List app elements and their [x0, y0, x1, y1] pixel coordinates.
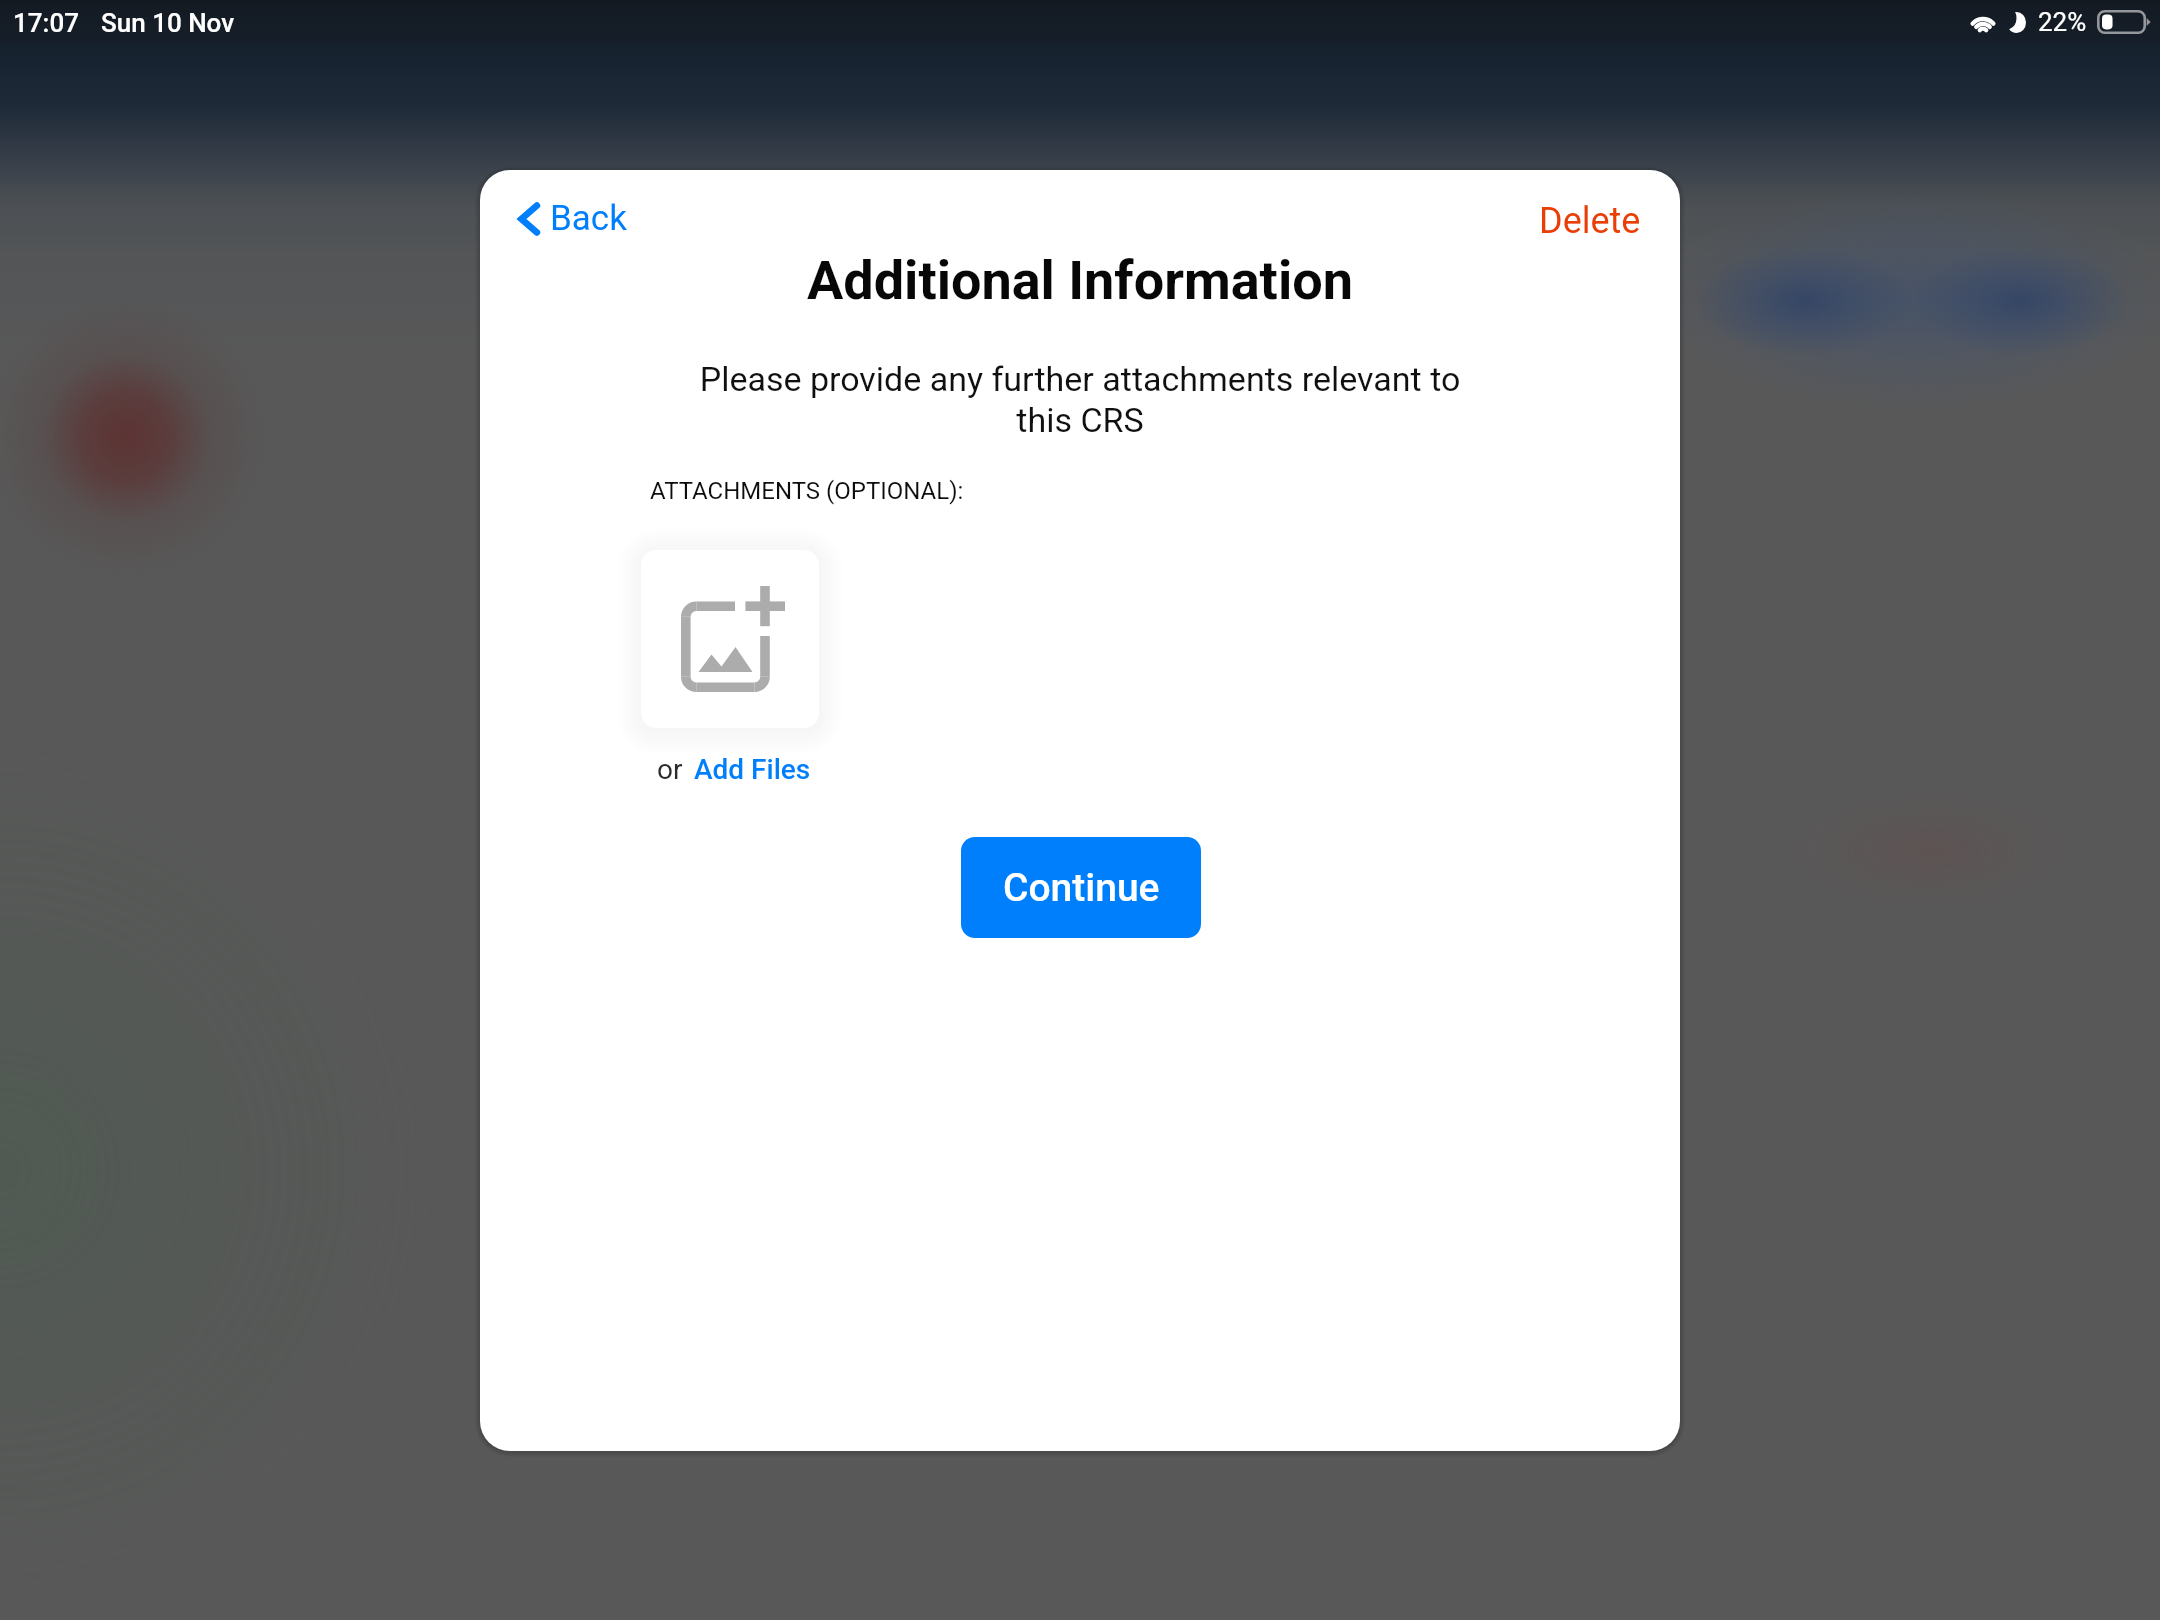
staticText: Add Files — [694, 753, 811, 786]
staticText: Sun 10 Nov — [101, 8, 235, 38]
staticText: 17:07 — [13, 8, 79, 38]
staticText: Delete — [1539, 200, 1641, 242]
staticText: Continue — [1003, 865, 1160, 911]
staticText: 22% — [2038, 7, 2087, 37]
staticText: ATTACHMENTS (OPTIONAL): — [650, 477, 964, 505]
staticText: Additional Information — [807, 249, 1353, 312]
staticText: Please provide any further attachments r… — [685, 359, 1475, 441]
button[interactable]: Back — [507, 190, 641, 247]
button[interactable]: Continue — [961, 837, 1201, 938]
button[interactable]: Delete — [1525, 192, 1655, 250]
button[interactable]: Add photo attachment — [641, 550, 819, 728]
staticText: or — [657, 753, 683, 786]
staticText: Back — [550, 198, 627, 239]
button[interactable]: Add Files — [694, 753, 811, 786]
